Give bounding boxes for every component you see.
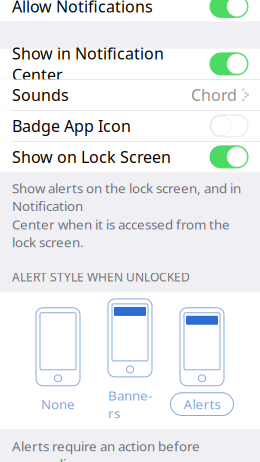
staticText: Show on Lock Screen bbox=[12, 146, 171, 167]
staticText: Center when it is accessed from the lock… bbox=[12, 216, 230, 251]
staticText: Allow Notifications bbox=[12, 0, 153, 17]
button[interactable]: Allow Notifications bbox=[0, 0, 260, 22]
staticText: Show alerts on the lock screen, and in N… bbox=[12, 179, 241, 214]
staticText: Badge App Icon bbox=[12, 115, 131, 136]
staticText: None bbox=[41, 395, 75, 413]
staticText: Show in Notification Center bbox=[12, 43, 164, 85]
button[interactable]: None bbox=[22, 308, 94, 415]
staticText: ALERT STYLE WHEN UNLOCKED bbox=[12, 269, 190, 285]
button[interactable]: Badge App Icon bbox=[0, 111, 260, 141]
button[interactable]: Alerts bbox=[166, 308, 238, 415]
button[interactable]: Banners bbox=[94, 299, 166, 424]
button[interactable]: Show on Lock Screen bbox=[0, 142, 260, 172]
button[interactable]: Show in Notification Center bbox=[0, 49, 260, 79]
staticText: Chord bbox=[191, 84, 237, 105]
staticText: Banners bbox=[108, 386, 152, 422]
staticText: Alerts bbox=[183, 395, 220, 413]
staticText: Sounds bbox=[12, 84, 69, 105]
button[interactable]: Sounds bbox=[0, 80, 260, 110]
staticText: Alerts require an action before proceedi… bbox=[12, 437, 200, 462]
